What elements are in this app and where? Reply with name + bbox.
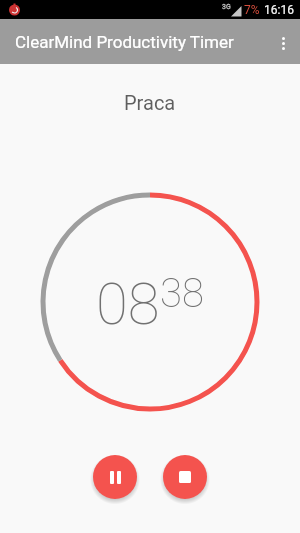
staticText: 16:16 [264,3,294,17]
staticText: 7% [244,3,260,17]
button[interactable] [282,37,285,50]
staticText: ClearMind Productivity Timer [15,32,234,52]
staticText: 08 [96,270,160,338]
staticText: 38 [160,270,204,317]
staticText: 3G [222,3,231,11]
staticText: Praca [124,91,176,114]
button[interactable] [93,455,137,499]
button[interactable] [163,455,207,499]
